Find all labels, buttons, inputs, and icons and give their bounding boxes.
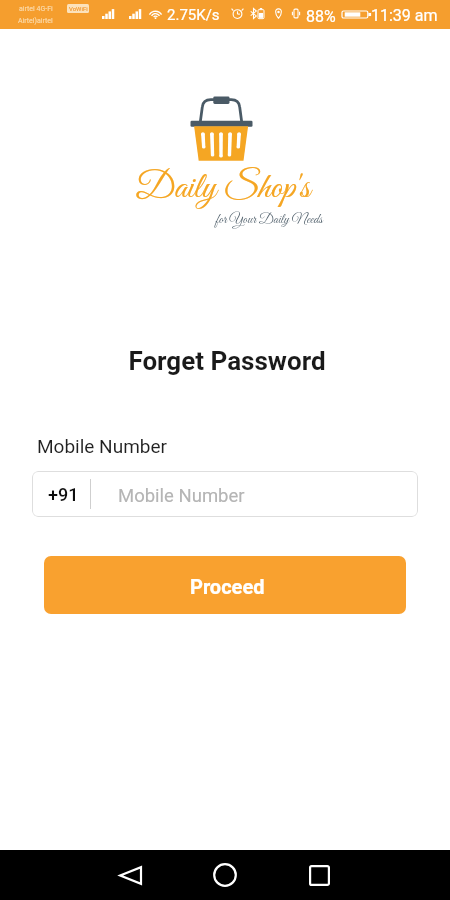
staticText: 2.75K/s xyxy=(167,6,220,24)
staticText: for Your Daily Needs xyxy=(216,211,323,229)
staticText: Airtel)airtel xyxy=(18,17,53,25)
staticText: Daily Shop's xyxy=(135,166,311,212)
staticText: Mobile Number xyxy=(37,435,167,457)
staticText: VoWiFi xyxy=(69,5,88,12)
button[interactable]: Proceed xyxy=(44,556,406,614)
staticText: airtel 4G-Fi xyxy=(19,5,53,13)
staticText: Mobile Number xyxy=(118,485,245,507)
staticText: +91 xyxy=(48,484,79,505)
button[interactable]: Back xyxy=(86,850,174,900)
staticText: Forget Password xyxy=(2,346,450,376)
staticText: 11:39 am xyxy=(371,6,438,25)
button[interactable]: Home xyxy=(181,850,269,900)
staticText: 88% xyxy=(306,7,336,26)
button[interactable]: Recent apps xyxy=(275,850,363,900)
staticText: Proceed xyxy=(190,575,265,598)
button[interactable]: +91 xyxy=(32,471,418,517)
